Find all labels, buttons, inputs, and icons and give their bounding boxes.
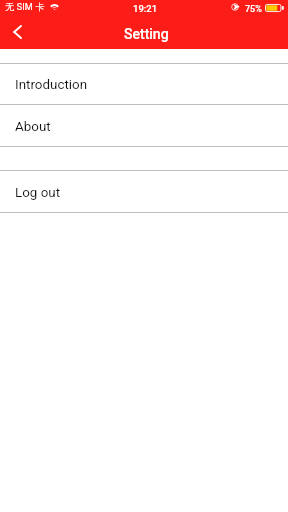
staticText: Log out	[15, 185, 61, 201]
button[interactable]: Introduction	[0, 64, 288, 104]
staticText: 75%	[245, 4, 262, 15]
button[interactable]: Back	[0, 18, 34, 46]
staticText: About	[15, 119, 51, 135]
button[interactable]: About	[0, 105, 288, 146]
staticText: Introduction	[15, 77, 88, 93]
staticText: 19:21	[133, 3, 158, 14]
staticText: 无 SIM 卡	[5, 1, 45, 12]
staticText: Setting	[124, 26, 169, 42]
button[interactable]: Log out	[0, 171, 288, 212]
